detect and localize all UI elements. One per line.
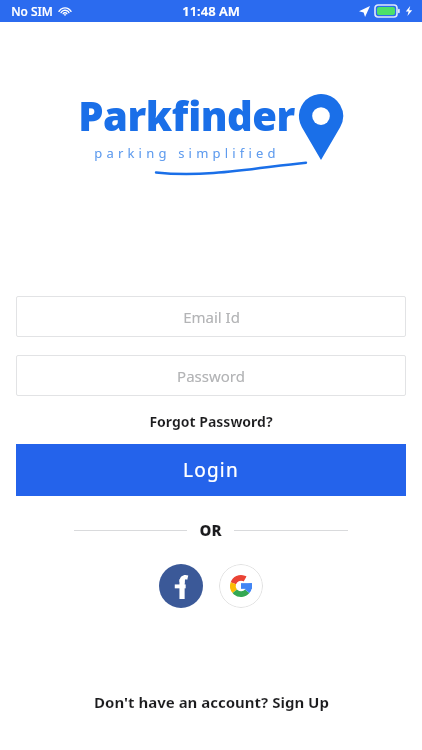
staticText: Forgot Password? (149, 412, 273, 431)
staticText: Email Id (183, 307, 240, 327)
staticText: Don't have an account? Sign Up (94, 692, 329, 712)
button[interactable]: Don't have an account? Sign Up (0, 692, 422, 750)
button[interactable]: Email Id (16, 296, 406, 337)
staticText: Login (183, 457, 239, 483)
button[interactable]: Sign in with Facebook (159, 564, 203, 608)
button[interactable]: Forgot Password? (0, 412, 422, 431)
button[interactable]: Login (16, 444, 406, 496)
button[interactable]: Sign in with Google (219, 564, 263, 608)
button[interactable]: Password (16, 355, 406, 396)
staticText: parking simplified (94, 144, 280, 162)
staticText: OR (199, 520, 222, 540)
staticText: Password (177, 366, 245, 386)
staticText: Parkfinder (78, 88, 295, 142)
staticText: 11:48 AM (182, 2, 240, 20)
staticText: No SIM (11, 3, 53, 19)
